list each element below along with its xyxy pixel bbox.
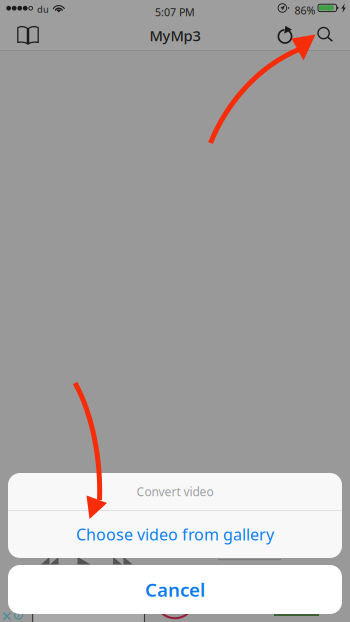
button[interactable]: Search	[304, 20, 342, 51]
staticText: du	[37, 3, 49, 15]
button[interactable]: Choose video from gallery	[8, 511, 342, 558]
staticText: MyMp3	[149, 26, 200, 45]
staticText: Choose video from gallery	[76, 524, 274, 545]
button[interactable]: Cancel	[8, 565, 342, 614]
staticText: Convert video	[136, 483, 213, 499]
button[interactable]: Refresh	[266, 20, 304, 51]
staticText: 86%	[294, 3, 315, 17]
staticText: 5:07 PM	[155, 5, 195, 19]
staticText: Cancel	[145, 577, 205, 602]
button[interactable]: Library	[0, 20, 44, 51]
